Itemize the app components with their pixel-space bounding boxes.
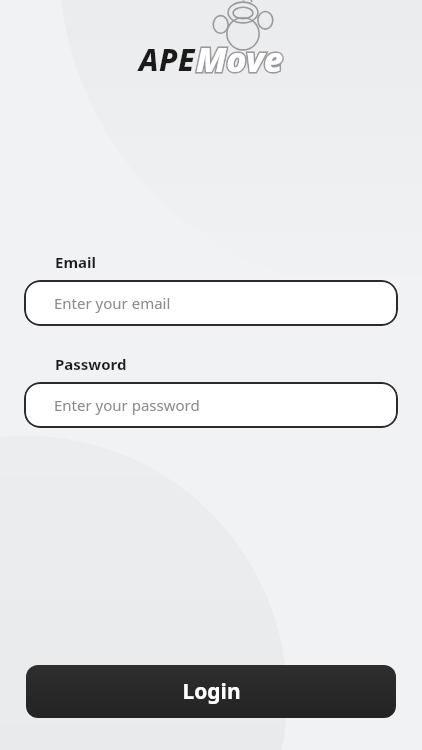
button[interactable]: Login (26, 665, 396, 718)
staticText: Email (55, 252, 96, 272)
staticText: Login (182, 677, 241, 706)
staticText: Enter your email (54, 293, 171, 313)
staticText: Move (196, 36, 284, 82)
staticText: Move (196, 36, 284, 82)
staticText: Password (55, 354, 127, 374)
button[interactable]: Enter your email (24, 280, 398, 326)
staticText: Enter your password (54, 395, 200, 415)
staticText: APE (139, 39, 196, 80)
button[interactable]: Enter your password (24, 382, 398, 428)
